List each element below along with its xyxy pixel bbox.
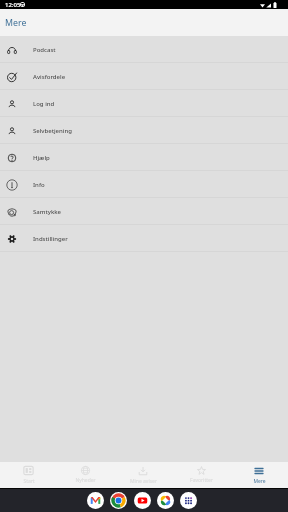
staticText: Podcast bbox=[33, 46, 56, 54]
button[interactable]: Favoritter bbox=[172, 462, 230, 488]
staticText: Selvbetjening bbox=[33, 127, 72, 135]
staticText: Mere bbox=[253, 478, 266, 485]
button[interactable]: Gmail bbox=[87, 492, 104, 509]
button[interactable]: Samtykke bbox=[0, 198, 288, 225]
staticText: Info bbox=[33, 181, 45, 189]
staticText: Mere bbox=[5, 17, 27, 29]
button[interactable]: Hjælp bbox=[0, 144, 288, 171]
staticText: Hjælp bbox=[33, 154, 50, 162]
staticText: Favoritter bbox=[190, 477, 213, 484]
button[interactable]: YouTube bbox=[134, 492, 151, 509]
staticText: Avisfordele bbox=[33, 73, 66, 81]
button[interactable]: Chrome bbox=[110, 492, 127, 509]
staticText: Nyheder bbox=[75, 477, 96, 484]
button[interactable]: Avisfordele bbox=[0, 63, 288, 90]
button[interactable]: Indstillinger bbox=[0, 225, 288, 252]
staticText: Mine aviser bbox=[130, 478, 157, 485]
button[interactable]: Podcast bbox=[0, 36, 288, 63]
staticText: Samtykke bbox=[33, 208, 62, 216]
button[interactable]: Selvbetjening bbox=[0, 117, 288, 144]
button[interactable]: Log ind bbox=[0, 90, 288, 117]
button[interactable]: All apps bbox=[180, 492, 197, 509]
staticText: Start bbox=[23, 478, 35, 485]
staticText: 12:05 bbox=[5, 1, 21, 9]
button[interactable]: Start bbox=[0, 462, 57, 488]
staticText: Indstillinger bbox=[33, 235, 68, 243]
button[interactable]: Mere bbox=[230, 462, 288, 488]
button[interactable]: Google Photos bbox=[157, 492, 174, 509]
staticText: Log ind bbox=[33, 100, 55, 108]
button[interactable]: Nyheder bbox=[57, 462, 114, 488]
button[interactable]: Mine aviser bbox=[114, 462, 172, 488]
button[interactable]: Info bbox=[0, 171, 288, 198]
